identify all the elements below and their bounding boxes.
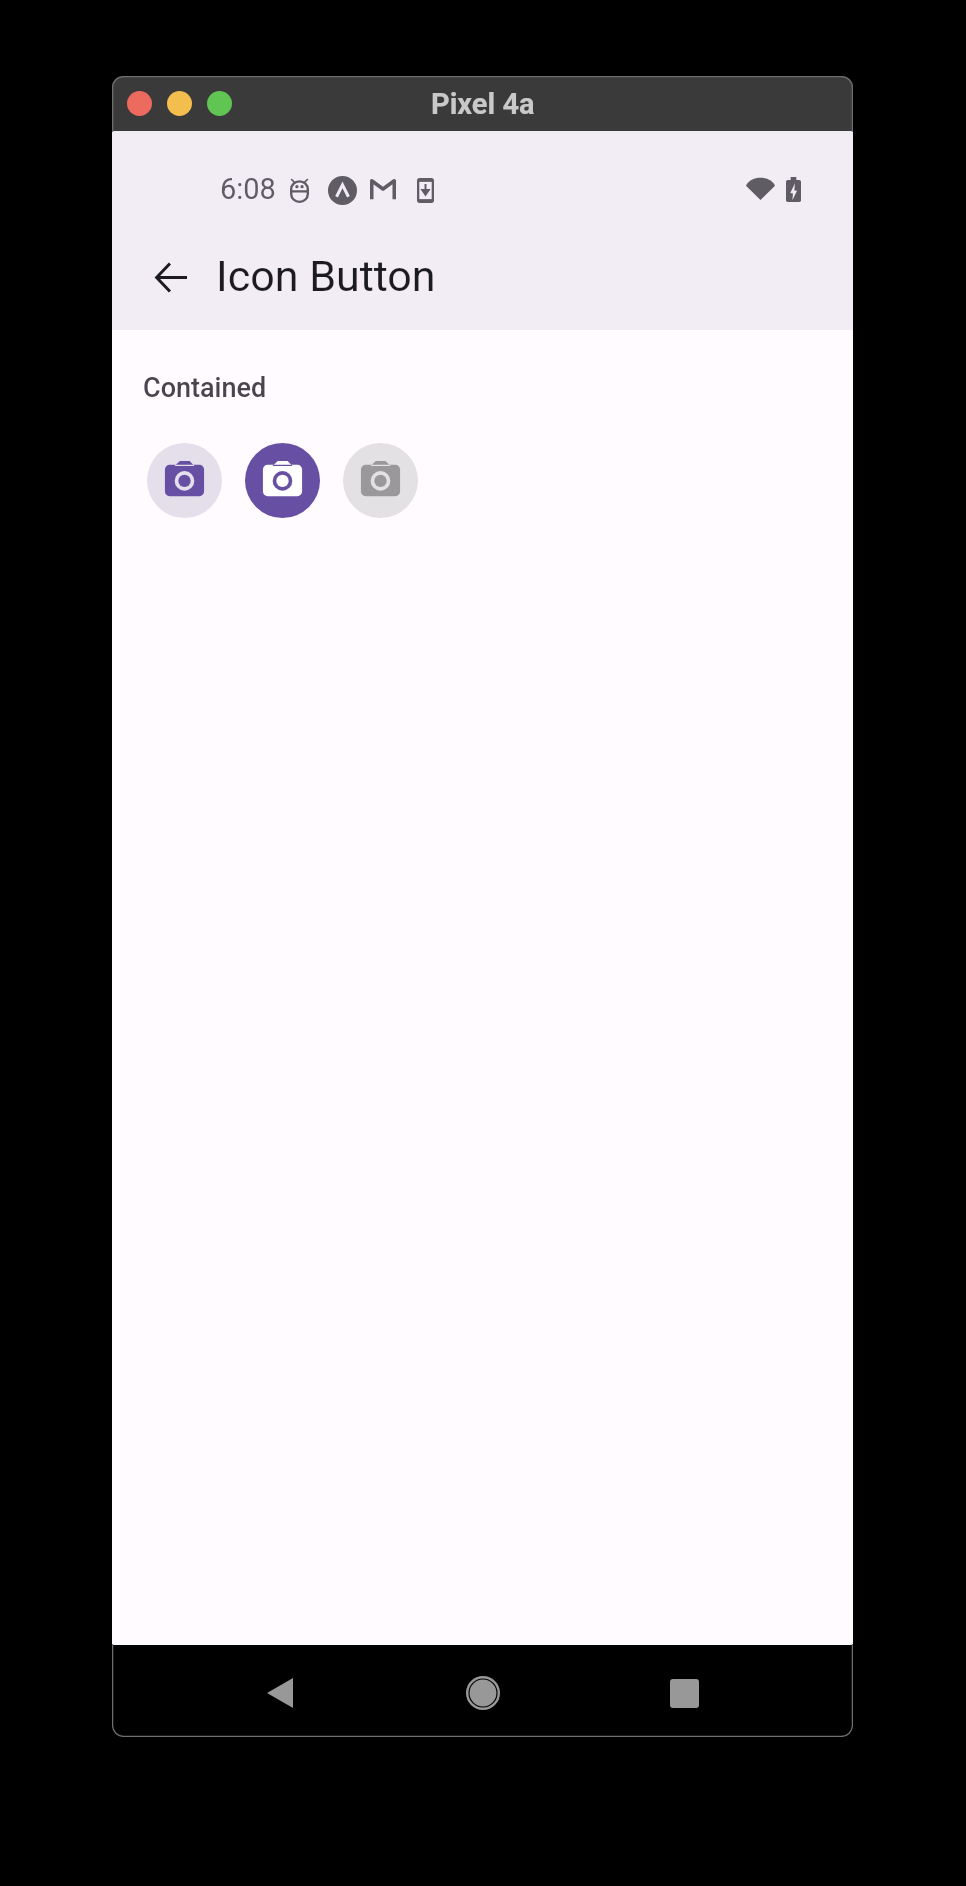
button[interactable]: Home: [447, 1657, 519, 1729]
button[interactable]: Minimise window: [167, 91, 192, 116]
button[interactable]: Back: [244, 1657, 316, 1729]
staticText: 6:08: [220, 172, 276, 206]
button[interactable]: Take photo: [343, 443, 418, 518]
staticText: Icon Button: [216, 251, 436, 301]
button[interactable]: Close window: [127, 91, 152, 116]
button[interactable]: Recent apps: [648, 1657, 720, 1729]
staticText: Pixel 4a: [431, 87, 535, 121]
button[interactable]: Navigate up: [141, 247, 201, 307]
button[interactable]: Take photo: [245, 443, 320, 518]
button[interactable]: Maximise window: [207, 91, 232, 116]
button[interactable]: Take photo: [147, 443, 222, 518]
staticText: Contained: [143, 372, 267, 404]
